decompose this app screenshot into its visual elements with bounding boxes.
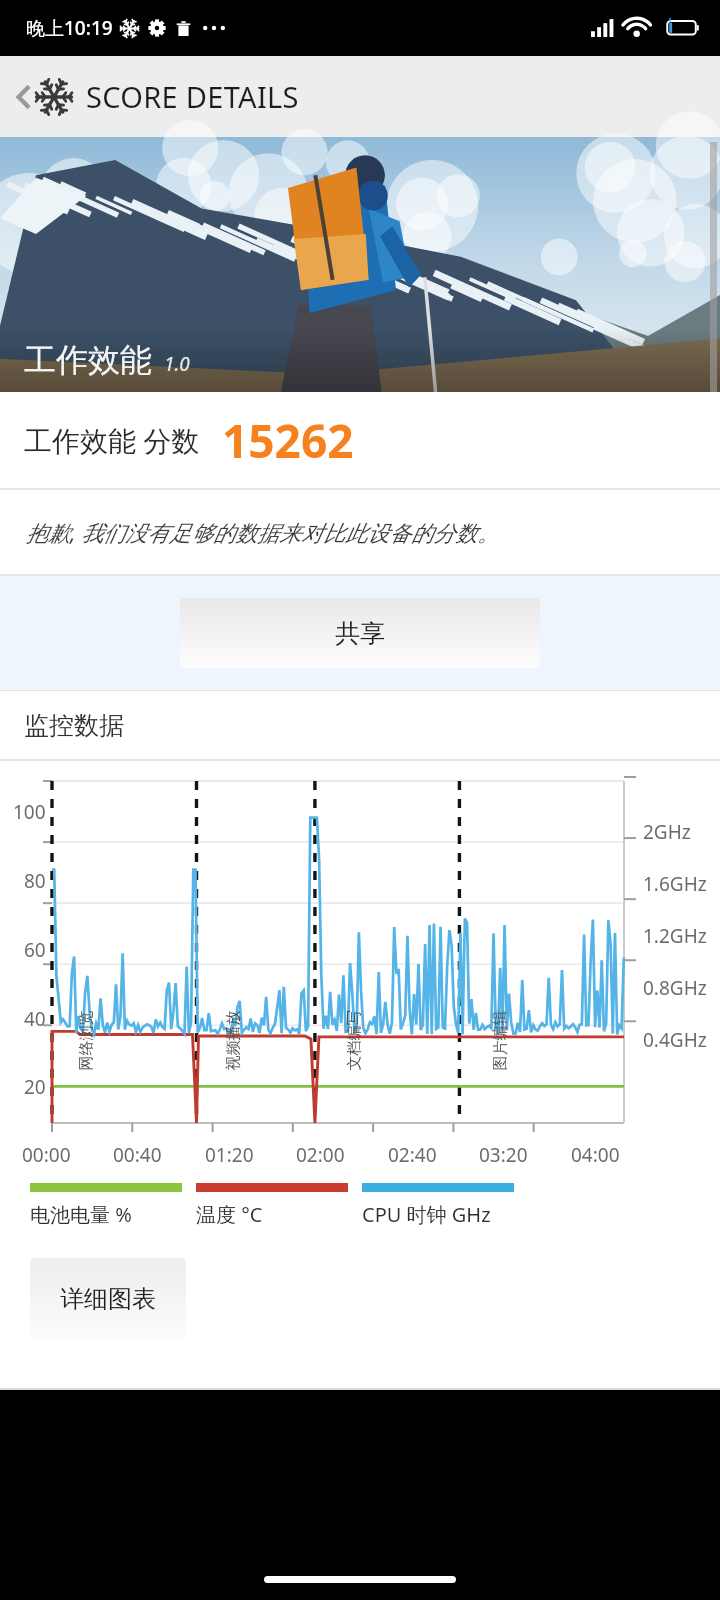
staticText: 04:00 xyxy=(571,1142,620,1168)
staticText: 80 xyxy=(24,868,46,894)
staticText: 02:00 xyxy=(296,1142,345,1168)
staticText: 01:20 xyxy=(205,1142,254,1168)
staticText: 文档编写 xyxy=(344,1010,363,1070)
staticText: 监控数据 xyxy=(24,710,124,741)
staticText: 15262 xyxy=(222,409,354,472)
staticText: 03:20 xyxy=(479,1142,528,1168)
staticText: 20 xyxy=(24,1074,46,1100)
button[interactable]: 详细图表 xyxy=(30,1258,186,1340)
staticText: 共享 xyxy=(335,618,385,649)
staticText: 详细图表 xyxy=(60,1284,156,1314)
staticText: CPU 时钟 GHz xyxy=(362,1201,491,1228)
staticText: 温度 °C xyxy=(196,1201,263,1228)
staticText: 图片编辑 xyxy=(490,1010,509,1070)
staticText: 100 xyxy=(13,799,46,825)
staticText: 1.0 xyxy=(164,351,190,377)
staticText: 40 xyxy=(24,1006,46,1032)
staticText: 1.6GHz xyxy=(643,871,707,897)
staticText: 00:00 xyxy=(22,1142,71,1168)
staticText: SCORE DETAILS xyxy=(86,77,299,116)
staticText: 1.2GHz xyxy=(643,923,707,949)
staticText: 00:40 xyxy=(113,1142,162,1168)
staticText: 0.4GHz xyxy=(643,1027,707,1053)
staticText: 02:40 xyxy=(388,1142,437,1168)
button[interactable]: 共享 xyxy=(180,598,540,668)
other: Back xyxy=(12,79,34,115)
staticText: 2GHz xyxy=(643,819,691,845)
button[interactable]: Back xyxy=(6,69,305,124)
staticText: 网络浏览 xyxy=(76,1010,95,1070)
staticText: 工作效能 分数 xyxy=(24,421,200,459)
staticText: 抱歉, 我们没有足够的数据来对比此设备的分数。 xyxy=(26,517,500,547)
staticText: 晚上10:19 xyxy=(26,15,113,41)
staticText: 0.8GHz xyxy=(643,975,707,1001)
staticText: 视频播放 xyxy=(223,1010,242,1070)
staticText: 工作效能 xyxy=(24,340,152,380)
staticText: 60 xyxy=(24,937,46,963)
staticText: 电池电量 % xyxy=(30,1201,132,1228)
